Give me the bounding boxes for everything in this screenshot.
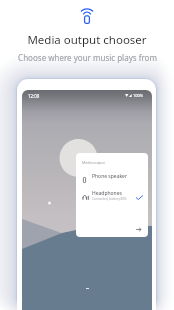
staticText: Media output chooser [27, 32, 147, 48]
staticText: 100% [133, 93, 144, 98]
staticText: Phone speaker [92, 173, 128, 180]
button[interactable]: Next [133, 226, 144, 233]
button[interactable]: Phone speaker [76, 169, 148, 183]
staticText: Connected, battery 80% [92, 197, 127, 201]
staticText: 12:00 [28, 93, 40, 99]
staticText: Headphones [92, 190, 122, 197]
other: Cast [81, 7, 93, 24]
staticText: Choose where your music plays from [18, 52, 157, 63]
button[interactable]: Headphones [76, 187, 148, 203]
staticText: Media output [82, 160, 105, 165]
